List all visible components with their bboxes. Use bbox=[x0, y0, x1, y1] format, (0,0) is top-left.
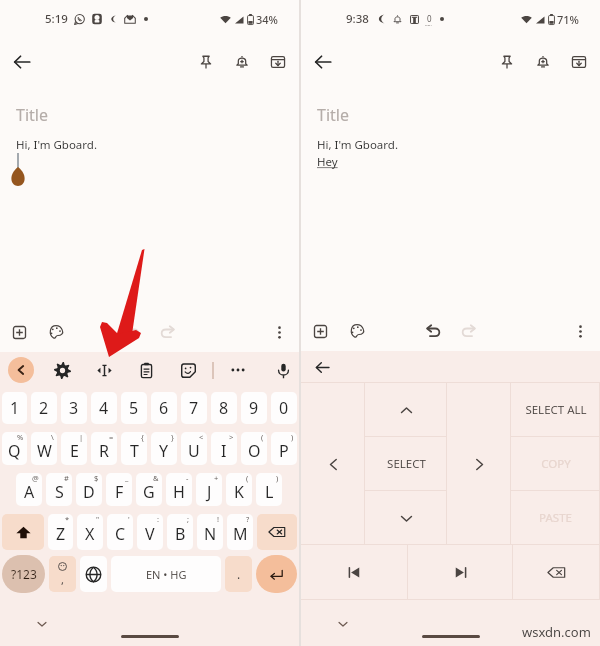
button[interactable]: SELECT ALL bbox=[511, 383, 600, 437]
button[interactable]: Z bbox=[48, 514, 73, 550]
button[interactable]: Back bbox=[8, 357, 34, 383]
button[interactable]: Emoji and comma bbox=[49, 556, 76, 592]
staticText: ! bbox=[217, 514, 220, 524]
button[interactable]: 1 bbox=[2, 392, 27, 424]
button[interactable]: N bbox=[197, 514, 223, 550]
button[interactable]: Backspace bbox=[257, 514, 297, 550]
button[interactable]: S bbox=[46, 473, 72, 506]
button[interactable]: . bbox=[225, 556, 252, 592]
button[interactable]: EN • HG bbox=[111, 556, 221, 592]
button[interactable]: Add bbox=[3, 316, 35, 348]
staticText: R bbox=[99, 440, 109, 462]
button[interactable]: Language bbox=[80, 556, 107, 592]
button[interactable]: Settings bbox=[47, 355, 77, 385]
button[interactable]: B bbox=[167, 514, 193, 550]
button[interactable]: Reminder bbox=[526, 45, 560, 79]
staticText: < bbox=[199, 432, 204, 442]
button[interactable]: K bbox=[226, 473, 252, 506]
button[interactable]: COPY bbox=[511, 437, 600, 491]
button[interactable]: J bbox=[196, 473, 222, 506]
button[interactable]: P bbox=[271, 432, 297, 465]
button[interactable]: H bbox=[166, 473, 192, 506]
button[interactable]: F bbox=[106, 473, 132, 506]
button[interactable]: Backspace bbox=[513, 545, 600, 600]
button[interactable]: C bbox=[107, 514, 133, 550]
staticText: } bbox=[171, 432, 174, 442]
button[interactable]: Pin bbox=[189, 45, 223, 79]
staticText: N bbox=[204, 523, 217, 545]
staticText: C bbox=[115, 523, 126, 545]
staticText: 34% bbox=[256, 12, 278, 27]
button[interactable]: More bbox=[223, 355, 253, 385]
button[interactable]: Shift bbox=[2, 514, 44, 550]
staticText: 9:38 bbox=[346, 11, 369, 27]
button[interactable]: SELECT bbox=[365, 437, 447, 491]
button[interactable]: Back bbox=[309, 354, 335, 380]
staticText: X bbox=[85, 523, 95, 545]
button[interactable]: 3 bbox=[61, 392, 87, 424]
button[interactable]: Redo bbox=[453, 315, 485, 347]
button[interactable]: Redo bbox=[152, 316, 184, 348]
button[interactable]: Y bbox=[151, 432, 177, 465]
button[interactable]: Back bbox=[306, 45, 340, 79]
button[interactable]: L bbox=[256, 473, 282, 506]
button[interactable]: Add bbox=[304, 315, 336, 347]
button[interactable]: X bbox=[77, 514, 103, 550]
button[interactable]: Palette bbox=[40, 316, 72, 348]
button[interactable]: Undo bbox=[116, 316, 148, 348]
button[interactable]: D bbox=[76, 473, 102, 506]
button[interactable]: Move to end bbox=[408, 545, 513, 600]
button[interactable]: Move to start bbox=[301, 545, 408, 600]
button[interactable]: Palette bbox=[341, 315, 373, 347]
button[interactable]: O bbox=[241, 432, 267, 465]
button[interactable]: Symbols bbox=[2, 555, 45, 593]
button[interactable]: 4 bbox=[91, 392, 117, 424]
button[interactable]: Stickers bbox=[173, 355, 203, 385]
button[interactable]: Undo bbox=[417, 315, 449, 347]
button[interactable]: A bbox=[16, 473, 42, 506]
button[interactable]: 2 bbox=[31, 392, 57, 424]
button[interactable]: Reminder bbox=[225, 45, 259, 79]
button[interactable]: T bbox=[121, 432, 147, 465]
staticText: COPY bbox=[541, 456, 571, 472]
button[interactable]: PASTE bbox=[511, 491, 600, 545]
button[interactable]: G bbox=[136, 473, 162, 506]
button[interactable]: Move down bbox=[365, 491, 447, 545]
button[interactable]: Enter bbox=[256, 555, 297, 593]
button[interactable]: 8 bbox=[211, 392, 237, 424]
button[interactable]: More options bbox=[264, 317, 294, 347]
staticText: 2 bbox=[39, 397, 49, 419]
button[interactable]: U bbox=[181, 432, 207, 465]
button[interactable]: 0 bbox=[271, 392, 297, 424]
button[interactable]: 5 bbox=[121, 392, 147, 424]
button[interactable]: Hide keyboard bbox=[333, 614, 353, 634]
button[interactable]: Q bbox=[2, 432, 27, 465]
button[interactable]: 9 bbox=[241, 392, 267, 424]
button[interactable]: R bbox=[91, 432, 117, 465]
button[interactable]: Archive bbox=[261, 45, 295, 79]
staticText: 71% bbox=[557, 12, 579, 27]
button[interactable]: M bbox=[227, 514, 253, 550]
button[interactable]: I bbox=[211, 432, 237, 465]
button[interactable]: 7 bbox=[181, 392, 207, 424]
staticText: A bbox=[24, 481, 35, 503]
button[interactable]: More options bbox=[565, 316, 595, 346]
button[interactable]: Voice input bbox=[268, 355, 298, 385]
button[interactable]: Text editing bbox=[89, 355, 119, 385]
staticText: 5:19 bbox=[45, 11, 68, 27]
button[interactable]: Archive bbox=[562, 45, 596, 79]
button[interactable]: Move right bbox=[447, 383, 511, 545]
button[interactable]: Pin bbox=[490, 45, 524, 79]
staticText: S bbox=[55, 481, 64, 503]
button[interactable]: E bbox=[61, 432, 87, 465]
button[interactable]: V bbox=[137, 514, 163, 550]
button[interactable]: Hide keyboard bbox=[32, 614, 52, 634]
button[interactable]: Move up bbox=[365, 383, 447, 437]
button[interactable]: Clipboard bbox=[131, 355, 161, 385]
button[interactable]: Back bbox=[5, 45, 39, 79]
button[interactable]: W bbox=[31, 432, 57, 465]
staticText: = bbox=[109, 432, 114, 442]
staticText: F bbox=[115, 481, 124, 503]
button[interactable]: 6 bbox=[151, 392, 177, 424]
button[interactable]: Move left bbox=[301, 383, 365, 545]
